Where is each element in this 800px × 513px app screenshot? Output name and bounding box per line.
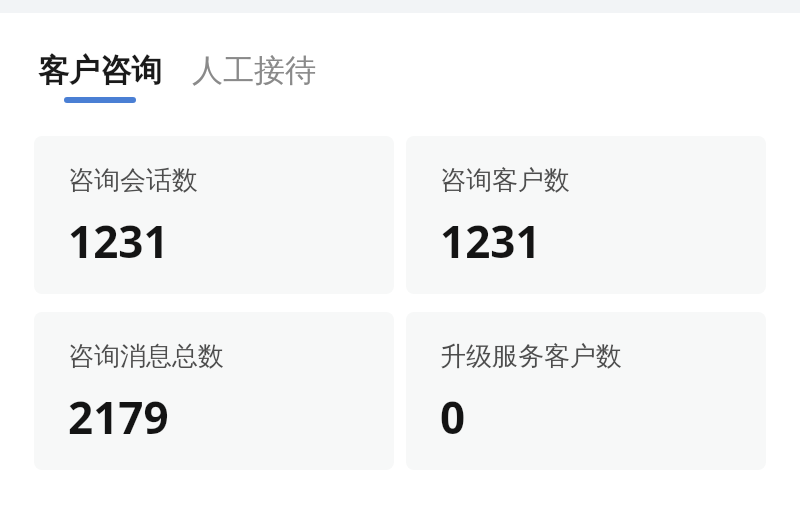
staticText: 0: [440, 387, 466, 447]
button[interactable]: 客户咨询: [36, 51, 164, 103]
staticText: 升级服务客户数: [440, 340, 622, 373]
staticText: 人工接待: [192, 51, 316, 90]
button[interactable]: 咨询客户数: [406, 136, 766, 294]
staticText: 2179: [68, 387, 169, 447]
button[interactable]: 升级服务客户数: [406, 312, 766, 470]
staticText: 1231: [440, 211, 541, 271]
staticText: 咨询会话数: [68, 164, 198, 197]
staticText: 咨询客户数: [440, 164, 570, 197]
button[interactable]: 咨询消息总数: [34, 312, 394, 470]
staticText: 1231: [68, 211, 169, 271]
staticText: 咨询消息总数: [68, 340, 224, 373]
button[interactable]: 咨询会话数: [34, 136, 394, 294]
staticText: 客户咨询: [38, 51, 162, 90]
button[interactable]: 人工接待: [190, 51, 318, 103]
